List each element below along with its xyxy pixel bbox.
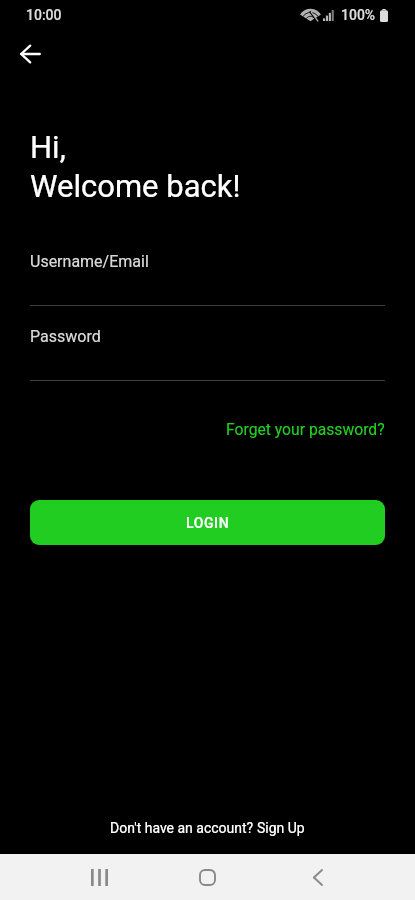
button[interactable]: Home [173,854,242,900]
button[interactable]: Recent apps [65,854,134,900]
button[interactable]: Sign Up [257,820,305,836]
button[interactable]: Forget your password? [226,415,385,443]
button[interactable]: Back [10,34,50,74]
button[interactable]: Back [283,854,352,900]
staticText: Sign Up [257,820,305,836]
staticText: LOGIN [186,515,230,531]
button[interactable]: LOGIN [30,500,385,545]
staticText: Don't have an account? [110,820,257,836]
staticText: Hi, Welcome back! [30,129,241,204]
staticText: 100% [341,7,376,23]
staticText: Password [30,327,101,346]
staticText: 10:00 [26,7,62,23]
staticText: Username/Email [30,252,149,271]
staticText: Forget your password? [226,420,385,438]
